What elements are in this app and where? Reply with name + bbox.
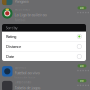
button[interactable]: Meus Times: [0, 5, 90, 20]
button[interactable]: Date: [2, 52, 86, 61]
staticText: Meus Times: [14, 8, 29, 11]
staticText: Tabela de jogos: [14, 85, 40, 90]
staticText: Rating: [6, 34, 16, 39]
staticText: GET: [79, 64, 84, 68]
button[interactable]: Rating: [2, 32, 86, 41]
staticText: Futebol: [14, 18, 25, 22]
staticText: GET: [79, 79, 84, 82]
button[interactable]: GET: [77, 64, 86, 67]
staticText: GET: [79, 6, 84, 10]
button[interactable]: Viagens: [0, 0, 90, 6]
button[interactable]: GET: [77, 79, 86, 82]
staticText: Pangaea: [14, 0, 28, 4]
staticText: Futebol ao vivo: [14, 70, 39, 75]
button[interactable]: Distance: [2, 42, 86, 51]
button[interactable]: GET: [77, 6, 86, 9]
staticText: Sort by: [5, 25, 17, 30]
staticText: La Liga brasileirao: [14, 12, 46, 17]
button[interactable]: Campeonato: [0, 78, 90, 90]
staticText: Distance: [6, 44, 21, 49]
staticText: Date: [6, 54, 14, 59]
staticText: Esportes: [14, 66, 25, 69]
button[interactable]: Esportes: [0, 63, 90, 78]
staticText: Campeonato: [14, 80, 31, 84]
